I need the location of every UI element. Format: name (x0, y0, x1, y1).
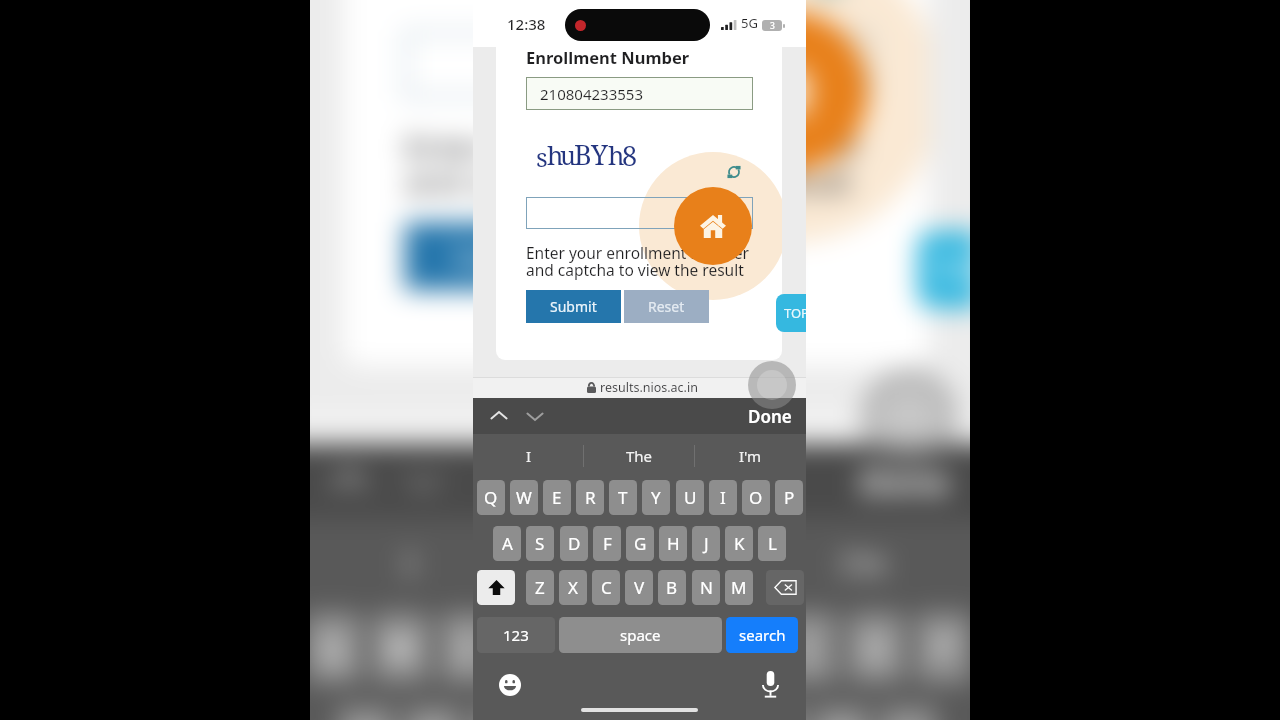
button[interactable]: X (559, 570, 587, 605)
button[interactable]: Z (526, 570, 554, 605)
button[interactable]: N (692, 570, 720, 605)
button[interactable]: Reset (624, 290, 709, 323)
staticText: P (784, 486, 795, 509)
button[interactable]: Refresh captcha (727, 165, 741, 179)
staticText: X (568, 576, 578, 599)
button[interactable]: E (439, 612, 497, 684)
staticText: E (552, 486, 562, 509)
button[interactable]: Done (748, 405, 792, 428)
button[interactable]: D (560, 526, 588, 561)
button[interactable] (526, 197, 753, 229)
staticText: Enrollment Number (526, 46, 690, 68)
staticText: M (731, 576, 747, 599)
button[interactable]: TOP (776, 294, 806, 332)
button[interactable]: Q (310, 612, 362, 684)
button[interactable]: Emoji (499, 674, 521, 696)
button[interactable]: Y (642, 612, 700, 684)
button[interactable]: R (507, 612, 564, 684)
button[interactable]: G (610, 706, 667, 720)
button[interactable]: space (559, 617, 722, 653)
button[interactable]: Dictate (761, 671, 780, 698)
button[interactable]: P (915, 612, 970, 684)
button[interactable]: T (575, 612, 632, 684)
staticText: Enter your enrollment number and captcha… (526, 242, 749, 281)
button[interactable]: P (775, 480, 803, 515)
button[interactable]: T (609, 480, 637, 515)
staticText: Y (661, 624, 681, 671)
button[interactable]: Shift (477, 570, 515, 605)
button[interactable]: B (658, 570, 686, 605)
button[interactable]: G (626, 526, 654, 561)
button[interactable]: M (725, 570, 753, 605)
button[interactable]: Backspace (766, 570, 804, 605)
staticText: h (547, 137, 564, 172)
staticText: Q (484, 486, 498, 509)
button[interactable] (405, 32, 870, 97)
button[interactable]: Screen recording (860, 368, 958, 466)
button[interactable]: L (880, 706, 938, 720)
staticText: I (720, 486, 726, 509)
button[interactable]: O (742, 480, 770, 515)
button[interactable]: H (677, 706, 735, 720)
button[interactable]: A (337, 706, 394, 720)
button[interactable]: 210804233553 (526, 77, 753, 110)
button[interactable]: F (542, 706, 599, 720)
button[interactable]: Q (477, 480, 505, 515)
button[interactable]: K (725, 526, 753, 561)
button[interactable]: I'm (751, 520, 970, 604)
button[interactable]: I (780, 612, 837, 684)
staticText: The (626, 446, 653, 466)
button[interactable]: I'm (695, 435, 806, 476)
button[interactable]: J (692, 526, 720, 561)
button[interactable]: K (813, 706, 870, 720)
staticText: results.nios.ac.in (556, 405, 757, 440)
button[interactable]: Submit (405, 222, 599, 290)
button[interactable]: Reset (605, 222, 780, 290)
button[interactable]: I (310, 520, 523, 604)
button[interactable]: TOP (917, 231, 970, 309)
button[interactable]: I (473, 435, 584, 476)
button[interactable]: 123 (477, 617, 555, 653)
button[interactable]: The (584, 435, 695, 476)
button[interactable]: Previous field (489, 406, 509, 426)
button[interactable]: W (372, 612, 429, 684)
staticText: F (603, 532, 612, 555)
staticText: Submit (550, 297, 597, 316)
button[interactable]: E (543, 480, 571, 515)
staticText: 8 (622, 137, 638, 174)
button[interactable]: Done (860, 458, 950, 505)
button[interactable]: S (526, 526, 554, 561)
button[interactable]: Previous field (329, 460, 370, 501)
button[interactable]: The (523, 520, 751, 604)
button[interactable]: Y (642, 480, 670, 515)
staticText: I (526, 446, 532, 466)
button[interactable]: C (592, 570, 620, 605)
button[interactable]: F (593, 526, 621, 561)
button[interactable]: search (726, 617, 798, 653)
button[interactable]: H (659, 526, 687, 561)
button[interactable]: U (712, 612, 770, 684)
button[interactable]: Home (708, 11, 868, 171)
button[interactable]: Next field (525, 406, 545, 426)
button[interactable]: Submit (526, 290, 621, 323)
button[interactable]: U (676, 480, 704, 515)
staticText: Z (535, 576, 545, 599)
button[interactable]: V (625, 570, 653, 605)
staticText: G (634, 532, 647, 555)
button[interactable]: Home (674, 187, 752, 265)
staticText: TOP (784, 304, 806, 322)
button[interactable]: R (576, 480, 604, 515)
staticText: O (749, 486, 763, 509)
button[interactable]: Screen recording (748, 361, 796, 409)
button[interactable]: O (847, 612, 905, 684)
button[interactable]: I (709, 480, 737, 515)
staticText: T (593, 624, 614, 671)
button[interactable]: A (493, 526, 521, 561)
button[interactable]: L (758, 526, 786, 561)
button[interactable]: W (510, 480, 538, 515)
button[interactable]: S (405, 706, 462, 720)
